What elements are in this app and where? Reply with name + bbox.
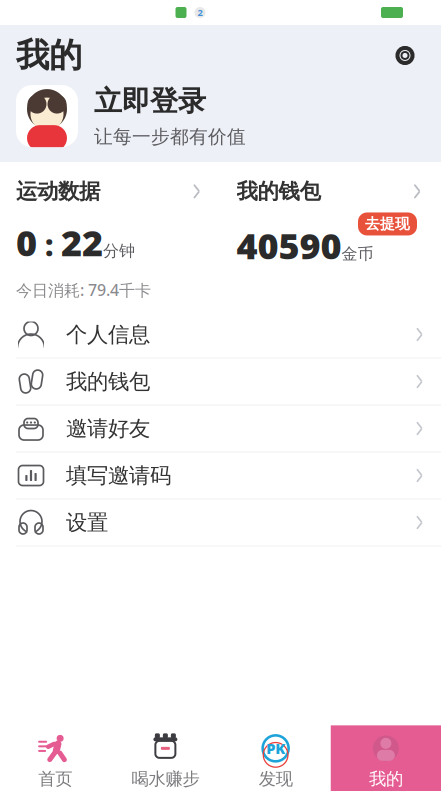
staticText: 我的钱包: [66, 368, 150, 395]
button[interactable]: 邀请好友: [0, 405, 441, 452]
staticText: 发现: [259, 768, 293, 790]
staticText: 填写邀请码: [66, 462, 171, 489]
staticText: 让每一步都有价值: [94, 125, 246, 148]
button[interactable]: 填写邀请码: [0, 452, 441, 499]
staticText: 我的钱包: [236, 178, 320, 204]
staticText: 2: [197, 6, 202, 19]
staticText: 22: [61, 218, 103, 266]
staticText: 邀请好友: [66, 415, 150, 442]
staticText: 0: [16, 218, 37, 266]
staticText: :: [37, 225, 61, 264]
staticText: 我的: [16, 35, 82, 76]
staticText: 个人信息: [66, 321, 150, 348]
staticText: PK: [266, 739, 285, 758]
button[interactable]: 立即登录: [0, 76, 441, 162]
button[interactable]: 个人信息: [0, 311, 441, 358]
staticText: 去提现: [365, 215, 410, 233]
staticText: 运动数据: [16, 178, 100, 204]
staticText: 今日消耗: 79.4千卡: [16, 279, 151, 300]
staticText: 立即登录: [94, 84, 206, 118]
staticText: 40590: [236, 221, 341, 269]
button[interactable]: 设置: [385, 35, 425, 75]
button[interactable]: 我的: [331, 725, 441, 791]
staticText: 金币: [341, 244, 373, 264]
staticText: 首页: [38, 768, 72, 790]
staticText: 设置: [66, 509, 108, 536]
button[interactable]: 设置: [0, 499, 441, 546]
staticText: 分钟: [103, 241, 135, 261]
button[interactable]: PK: [220, 725, 331, 791]
button[interactable]: 首页: [0, 725, 110, 791]
button[interactable]: 喝水赚步: [110, 725, 220, 791]
button[interactable]: 我的钱包: [220, 178, 441, 304]
button[interactable]: 运动数据: [0, 178, 220, 301]
button[interactable]: 我的钱包: [0, 358, 441, 405]
staticText: 喝水赚步: [131, 768, 199, 790]
staticText: 我的: [369, 768, 403, 790]
